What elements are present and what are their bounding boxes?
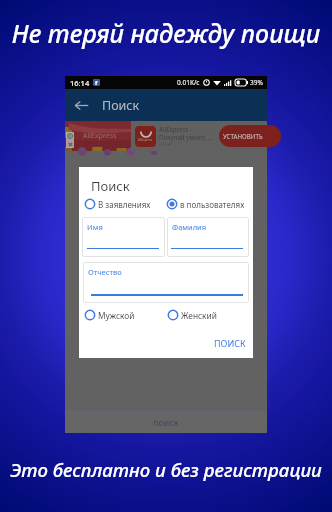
staticText: Не теряй надежду поищи bbox=[0, 16, 332, 50]
staticText: в пользователях bbox=[180, 199, 245, 210]
button[interactable]: Back bbox=[65, 89, 97, 121]
button[interactable]: Мужской bbox=[84, 309, 135, 321]
button[interactable]: в пользователях bbox=[166, 198, 245, 210]
staticText: AliExpress bbox=[138, 138, 153, 142]
button[interactable]: Фамилия bbox=[167, 217, 249, 257]
staticText: 4.6 ★ bbox=[159, 141, 172, 148]
button[interactable]: УСТАНОВИТЬ bbox=[219, 125, 281, 147]
staticText: Мужской bbox=[98, 310, 135, 321]
staticText: Женский bbox=[181, 310, 217, 321]
staticText: поиск bbox=[153, 416, 179, 428]
staticText: 39% bbox=[250, 78, 263, 87]
staticText: Поиск bbox=[91, 177, 130, 195]
staticText: ПОИСК bbox=[214, 337, 246, 349]
staticText: Фамилия bbox=[172, 222, 207, 232]
button[interactable]: Отчество bbox=[83, 262, 249, 303]
button[interactable]: Имя bbox=[82, 217, 165, 257]
staticText: AliExpress bbox=[83, 131, 117, 141]
staticText: AliExpress - bbox=[159, 125, 193, 133]
button[interactable]: ПОИСК bbox=[210, 335, 250, 351]
staticText: 0.01K/c bbox=[177, 78, 200, 87]
staticText: Покупай умнее, ... bbox=[159, 133, 214, 141]
staticText: Отчество bbox=[88, 267, 122, 277]
staticText: 16:14 bbox=[70, 78, 90, 88]
button[interactable]: поиск bbox=[65, 411, 267, 433]
staticText: В заявлениях bbox=[98, 199, 151, 210]
button[interactable]: В заявлениях bbox=[84, 198, 151, 210]
staticText: f bbox=[95, 79, 98, 86]
staticText: УСТАНОВИТЬ bbox=[223, 132, 263, 140]
staticText: Поиск bbox=[102, 97, 140, 114]
button[interactable]: Женский bbox=[167, 309, 217, 321]
staticText: Это бесплатно и без регистрации bbox=[0, 457, 332, 482]
staticText: Имя bbox=[87, 222, 103, 232]
button[interactable]: AliExpress bbox=[65, 121, 267, 151]
